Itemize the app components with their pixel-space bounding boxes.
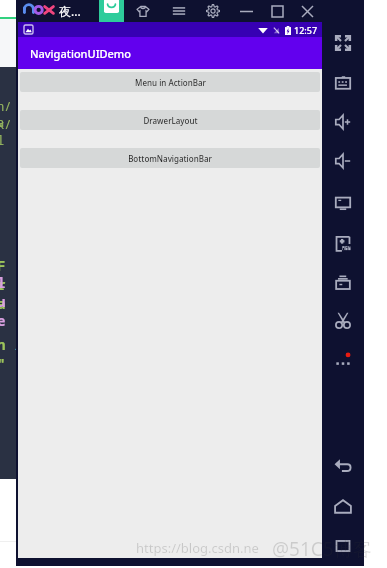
button[interactable]: Volume up [323, 108, 363, 136]
button[interactable]: Minimise [233, 0, 259, 22]
staticText: Fra [0, 256, 13, 313]
staticText: BottomNavigationBar [128, 153, 212, 164]
staticText: @51C5博客 [272, 536, 372, 562]
staticText: NavigationUIDemo [30, 46, 132, 61]
button[interactable]: Volume down [323, 147, 363, 175]
button[interactable]: Home [323, 493, 363, 521]
button[interactable]: Install APK [323, 230, 363, 258]
staticText: n" [0, 335, 13, 373]
staticText: 夜... [59, 3, 81, 19]
button[interactable]: Shared folder [323, 268, 363, 296]
staticText: DrawerLayout [143, 115, 198, 126]
button[interactable]: Screenshot [323, 306, 363, 334]
button[interactable]: Menu [167, 0, 191, 22]
button[interactable]: Keyboard [323, 69, 363, 97]
button[interactable]: Themes [131, 0, 155, 22]
button[interactable]: DrawerLayout [20, 110, 320, 130]
staticText: lue [0, 273, 13, 330]
staticText: 12:57 [294, 24, 318, 36]
button[interactable]: Back [323, 452, 363, 480]
staticText: n/a [0, 98, 13, 130]
button[interactable]: Display [323, 189, 363, 217]
button[interactable]: Settings [201, 0, 225, 22]
staticText: Menu in ActionBar [135, 77, 206, 88]
button[interactable]: Recent apps [323, 532, 363, 560]
button[interactable]: Maximise [264, 0, 290, 22]
button[interactable]: Fullscreen [323, 29, 363, 57]
staticText: https://blog.csdn.ne [136, 539, 259, 557]
button[interactable]: More options [323, 344, 363, 372]
button[interactable]: Menu in ActionBar [20, 72, 320, 92]
button[interactable]: App store tab [99, 0, 124, 22]
button[interactable]: Close [294, 0, 320, 22]
staticText: k/l [0, 116, 13, 148]
staticText: / [14, 335, 23, 354]
button[interactable]: BottomNavigationBar [20, 148, 320, 168]
